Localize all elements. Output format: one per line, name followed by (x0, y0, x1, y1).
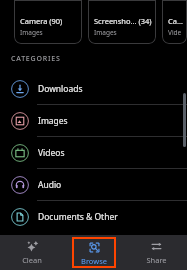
staticText: Images (38, 115, 68, 127)
staticText: Camera (168, 16, 184, 26)
staticText: Images (94, 28, 117, 37)
staticText: CATEGORIES (11, 54, 61, 64)
staticText: Downloads (38, 83, 83, 95)
button[interactable]: Images (0, 105, 187, 136)
staticText: Camera (90) (20, 16, 63, 26)
button[interactable]: Audio (0, 169, 187, 200)
button[interactable]: Downloads (0, 73, 187, 104)
button[interactable]: Camera (162, 0, 187, 44)
button[interactable]: Share (146, 240, 167, 265)
button[interactable]: Clean (22, 240, 42, 265)
button[interactable]: Camera (90) (14, 0, 82, 44)
other: Clean (26, 240, 39, 253)
staticText: Audio (38, 179, 62, 191)
staticText: Share (146, 255, 167, 265)
staticText: Browse (81, 256, 107, 266)
staticText: Videos (168, 28, 184, 37)
staticText: Images (20, 28, 43, 37)
staticText: Videos (38, 147, 65, 159)
button[interactable]: Browse (72, 237, 116, 268)
button[interactable]: Documents & Other (0, 201, 187, 232)
button[interactable]: Videos (0, 137, 187, 168)
staticText: Clean (22, 255, 42, 265)
staticText: Screensho... (34) (94, 16, 152, 26)
button[interactable]: Screensho... (34) (88, 0, 156, 44)
staticText: Documents & Other (38, 211, 118, 223)
other: Browse (88, 241, 101, 254)
other: Share (150, 240, 163, 253)
